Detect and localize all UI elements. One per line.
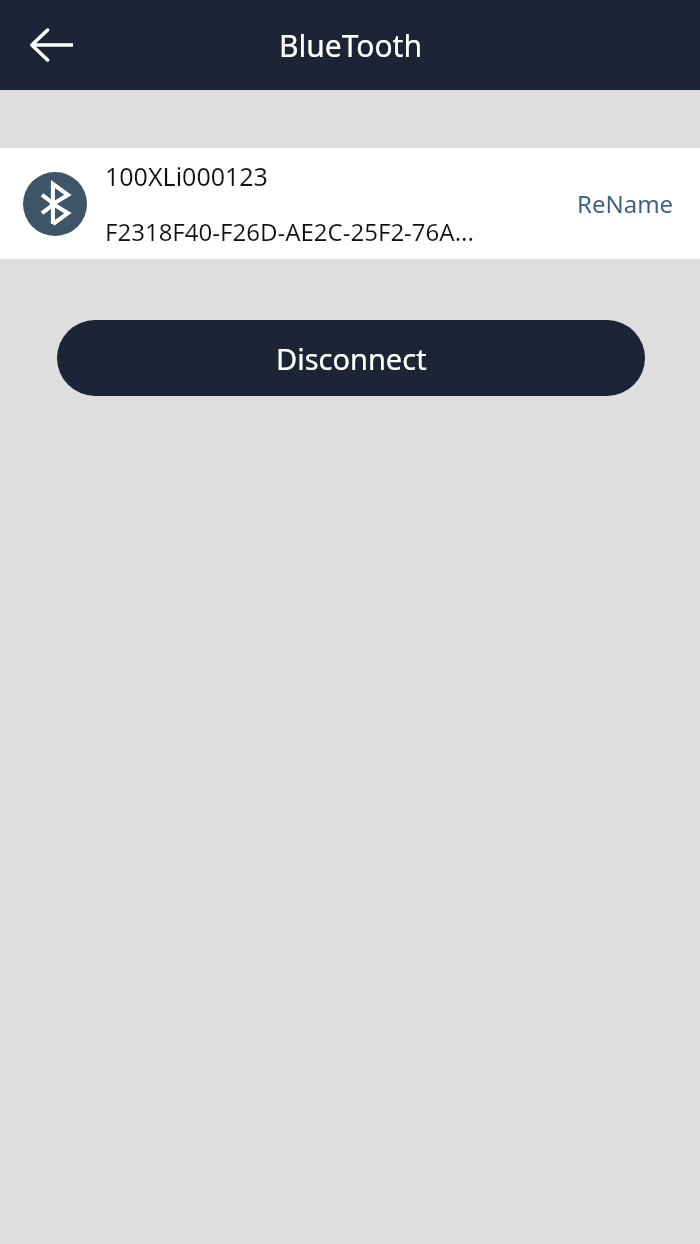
staticText: 100XLi000123 — [105, 159, 268, 193]
button[interactable]: ReName — [571, 179, 680, 228]
staticText: ReName — [577, 187, 674, 220]
button[interactable]: Back — [10, 3, 94, 87]
staticText: Disconnect — [276, 339, 427, 378]
button[interactable]: Disconnect — [57, 320, 645, 396]
staticText: F2318F40-F26D-AE2C-25F2-76A... — [105, 215, 474, 248]
button[interactable]: 100XLi000123 — [0, 148, 700, 259]
staticText: BlueTooth — [279, 25, 422, 66]
